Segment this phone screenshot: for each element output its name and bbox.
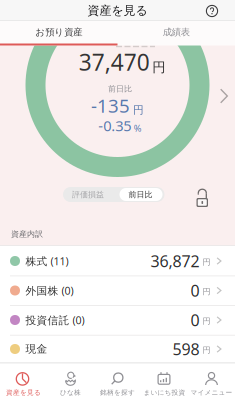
staticText: 株式 (11)	[25, 254, 68, 268]
staticText: 資産内訳	[11, 229, 43, 239]
staticText: 成績表	[163, 26, 190, 38]
button[interactable]: 資産詳細を見る	[216, 84, 232, 108]
button[interactable]: 成績表	[117, 21, 235, 43]
staticText: 投資信託 (0)	[25, 313, 84, 327]
button[interactable]: ひな株	[47, 367, 94, 400]
staticText: 現金	[25, 342, 47, 355]
staticText: まいにち投資	[143, 388, 185, 397]
staticText: 0	[190, 280, 199, 301]
staticText: 銘柄を探す	[100, 388, 135, 397]
button[interactable]: まいにち投資	[141, 367, 188, 400]
staticText: 0	[190, 309, 199, 331]
staticText: マイメニュー	[190, 388, 232, 397]
staticText: 37,470	[79, 47, 150, 77]
staticText: 円	[202, 345, 210, 355]
button[interactable]: 資産を見る	[0, 367, 47, 400]
staticText: お預り資産	[35, 26, 82, 38]
staticText: 円	[152, 59, 165, 76]
button[interactable]: マイメニュー	[188, 367, 235, 400]
staticText: -135	[91, 93, 130, 118]
button[interactable]: 株式 (11)	[0, 246, 235, 275]
staticText: %	[134, 122, 142, 134]
button[interactable]: 銘柄を探す	[94, 367, 141, 400]
staticText: 前日比	[108, 84, 132, 94]
button[interactable]: 外国株 (0)	[0, 276, 235, 305]
button[interactable]: 投資信託 (0)	[0, 305, 235, 334]
staticText: 598	[172, 338, 199, 360]
staticText: 円	[202, 287, 210, 297]
button[interactable]: お預り資産	[0, 21, 117, 43]
button[interactable]: 評価損益と前日比の切り替え	[63, 187, 164, 202]
staticText: 資産を見る	[6, 388, 41, 397]
staticText: 円	[202, 316, 210, 326]
staticText: 外国株 (0)	[25, 283, 73, 298]
button[interactable]: ヘルプ	[203, 2, 220, 19]
staticText: 円	[202, 257, 210, 267]
staticText: 円	[133, 103, 144, 116]
staticText: ひな株	[60, 388, 81, 397]
button[interactable]: 金額表示の切り替え	[194, 188, 211, 208]
staticText: 36,872	[150, 250, 199, 272]
button[interactable]: 現金	[0, 334, 235, 363]
staticText: -0.35	[98, 116, 131, 135]
staticText: 前日比	[128, 190, 152, 199]
staticText: 資産を見る	[87, 3, 147, 18]
staticText: 評価損益	[72, 190, 104, 199]
